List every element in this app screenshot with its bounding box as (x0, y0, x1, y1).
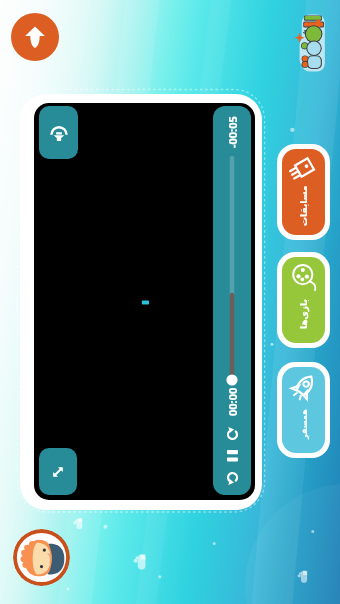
staticText: بازی‌ها (299, 299, 309, 329)
staticText: همسفر (300, 409, 309, 439)
button[interactable]: مسابقات (282, 149, 325, 235)
button[interactable]: همسفر (282, 367, 325, 453)
button[interactable]: Logo (296, 12, 332, 74)
staticText: 00:00 (225, 387, 239, 416)
button[interactable]: Cast (39, 106, 78, 159)
staticText: مسابقات (299, 185, 309, 226)
button[interactable]: Profile (13, 529, 70, 586)
staticText: -00:05 (225, 116, 239, 148)
button[interactable]: بازی‌ها (282, 257, 325, 343)
button[interactable]: Up (11, 13, 59, 61)
button[interactable]: Fullscreen (39, 448, 77, 495)
